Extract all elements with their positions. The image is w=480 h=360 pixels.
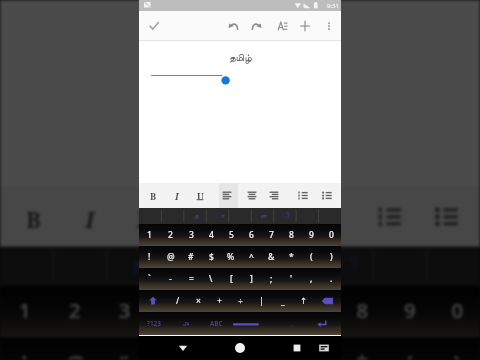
button[interactable]: -	[160, 268, 181, 290]
button[interactable]: 9	[301, 224, 321, 246]
button[interactable]: 2	[50, 285, 100, 337]
button[interactable]: &	[290, 337, 337, 360]
button[interactable]: Format option	[297, 187, 344, 246]
button[interactable]	[231, 208, 253, 224]
button[interactable]: ி	[323, 246, 375, 284]
button[interactable]: 7	[290, 285, 337, 337]
button[interactable]: `	[139, 268, 160, 290]
button[interactable]: Format option	[293, 183, 313, 208]
button[interactable]	[0, 246, 55, 284]
button[interactable]: 8	[337, 285, 385, 337]
button[interactable]: Back	[171, 336, 195, 360]
button[interactable]: %	[221, 246, 241, 268]
button[interactable]: Format option	[245, 187, 292, 246]
button[interactable]: Undo	[221, 14, 245, 38]
button[interactable]: Format option	[242, 183, 262, 208]
button[interactable]: Format option	[143, 183, 163, 208]
button[interactable]: Format option	[423, 187, 470, 246]
button[interactable]	[297, 208, 319, 224]
button[interactable]: )	[432, 337, 480, 360]
button[interactable]: Format option	[9, 187, 57, 246]
button[interactable]: த	[109, 246, 164, 284]
button[interactable]: Format option	[66, 187, 114, 246]
button[interactable]: 9	[385, 285, 432, 337]
button[interactable]: 2	[160, 224, 181, 246]
button[interactable]: 6	[241, 224, 261, 246]
button[interactable]: Format option	[185, 187, 233, 246]
button[interactable]: More options	[317, 14, 341, 38]
button[interactable]: Format option	[317, 183, 337, 208]
button[interactable]: !	[0, 337, 50, 360]
button[interactable]: 4	[147, 285, 195, 337]
button[interactable]: ^	[242, 337, 290, 360]
button[interactable]: Done	[146, 18, 162, 34]
button[interactable]: ÷	[230, 290, 251, 312]
button[interactable]: 8	[281, 224, 301, 246]
button[interactable]: 5	[195, 285, 242, 337]
button[interactable]: Insert	[293, 14, 317, 38]
button[interactable]: 3	[181, 224, 201, 246]
button[interactable]	[428, 246, 480, 284]
button[interactable]: *	[281, 246, 301, 268]
button[interactable]: $	[201, 246, 221, 268]
button[interactable]: Format option	[366, 187, 413, 246]
button[interactable]: [	[221, 268, 241, 290]
button[interactable]: Enter	[305, 312, 341, 335]
button[interactable]: _	[272, 290, 293, 312]
button[interactable]: '	[281, 268, 301, 290]
button[interactable]: Recent apps	[285, 336, 309, 360]
button[interactable]: 0	[321, 224, 341, 246]
button[interactable]: 1	[0, 285, 50, 337]
button[interactable]: .	[279, 312, 305, 335]
button[interactable]: |	[251, 290, 272, 312]
button[interactable]: #	[100, 337, 147, 360]
button[interactable]: +	[209, 290, 230, 312]
button[interactable]: .	[321, 268, 341, 290]
button[interactable]: @	[50, 337, 100, 360]
button[interactable]: 0	[432, 285, 480, 337]
button[interactable]: =	[181, 268, 201, 290]
button[interactable]: 4	[201, 224, 221, 246]
button[interactable]: Format option	[190, 183, 210, 208]
button[interactable]	[219, 246, 271, 284]
button[interactable]: Backspace	[314, 290, 341, 312]
button[interactable]: ×	[188, 290, 209, 312]
button[interactable]: ி	[275, 208, 297, 224]
button[interactable]: Redo	[245, 14, 269, 38]
button[interactable]: #	[181, 246, 201, 268]
button[interactable]: ;	[261, 268, 281, 290]
button[interactable]: ா	[208, 208, 231, 224]
button[interactable]: \	[201, 268, 221, 290]
button[interactable]	[55, 246, 109, 284]
button[interactable]: ன	[271, 246, 323, 284]
button[interactable]: த	[185, 208, 208, 224]
button[interactable]: $	[147, 337, 195, 360]
button[interactable]: Format option	[167, 183, 187, 208]
button[interactable]: ,	[301, 268, 321, 290]
button[interactable]	[375, 246, 428, 284]
button[interactable]: Format option	[217, 183, 237, 208]
button[interactable]: (	[385, 337, 432, 360]
button[interactable]: Format option	[264, 183, 284, 208]
button[interactable]: ]	[241, 268, 261, 290]
button[interactable]: @	[160, 246, 181, 268]
button[interactable]: ABC	[201, 312, 231, 335]
button[interactable]: Home	[228, 336, 252, 360]
button[interactable]: !	[139, 246, 160, 268]
button[interactable]: %	[195, 337, 242, 360]
button[interactable]: ^	[241, 246, 261, 268]
button[interactable]: Format option	[121, 187, 169, 246]
button[interactable]: அ	[170, 312, 201, 335]
button[interactable]: ா	[164, 246, 219, 284]
button[interactable]: )	[321, 246, 341, 268]
button[interactable]	[139, 208, 162, 224]
button[interactable]: 6	[242, 285, 290, 337]
button[interactable]: ன	[253, 208, 275, 224]
button[interactable]: 5	[221, 224, 241, 246]
button[interactable]: Shift	[139, 290, 167, 312]
button[interactable]: Text formatting	[269, 14, 293, 38]
button[interactable]: ↑	[293, 290, 314, 312]
button[interactable]: &	[261, 246, 281, 268]
